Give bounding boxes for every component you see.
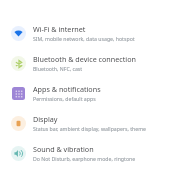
other: Apps & notifications (12, 87, 25, 100)
other: Display (11, 116, 26, 131)
button[interactable]: Apps & notifications (0, 78, 172, 108)
staticText: Permissions, default apps (33, 95, 96, 102)
staticText: Wi-Fi & internet (33, 24, 86, 34)
staticText: SIM, mobile network, data usage, hotspot (33, 35, 135, 42)
other: Sound & vibration (11, 146, 26, 161)
staticText: Display (33, 114, 58, 124)
staticText: Apps & notifications (33, 84, 101, 94)
button[interactable]: Display (0, 108, 172, 138)
button[interactable]: Wi-Fi & internet (0, 18, 172, 48)
other: Bluetooth & device connection (11, 56, 26, 71)
staticText: Do Not Disturb, earphone mode, ringtone (33, 155, 136, 162)
staticText: Status bar, ambient display, wallpapers,… (33, 125, 146, 132)
staticText: Bluetooth & device connection (33, 54, 136, 64)
staticText: Bluetooth, NFC, cast (33, 65, 83, 72)
button[interactable]: Bluetooth & device connection (0, 48, 172, 78)
button[interactable]: Sound & vibration (0, 138, 172, 168)
other: Wi-Fi & internet (11, 26, 26, 41)
staticText: Sound & vibration (33, 144, 94, 154)
